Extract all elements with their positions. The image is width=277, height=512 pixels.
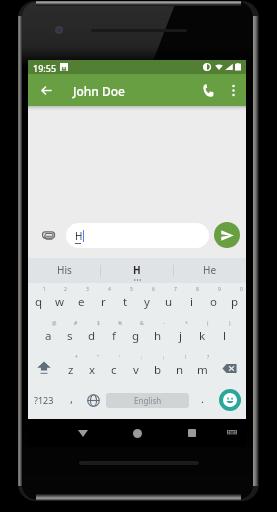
staticText: He — [203, 263, 217, 277]
staticText: 6 — [152, 286, 155, 293]
staticText: h — [154, 328, 162, 344]
button[interactable]: . — [191, 385, 213, 415]
staticText: H — [133, 263, 141, 277]
staticText: . — [201, 391, 204, 406]
button[interactable]: ) — [213, 317, 235, 351]
staticText: 8 — [196, 286, 199, 293]
button[interactable]: 1 — [28, 283, 49, 317]
staticText: b — [154, 362, 162, 378]
button[interactable]: 0 — [224, 283, 246, 317]
staticText: e — [78, 294, 85, 310]
staticText: w — [55, 294, 65, 310]
staticText: k — [199, 328, 206, 344]
button[interactable]: Hide keyboard — [224, 425, 240, 441]
staticText: # — [74, 320, 78, 327]
button[interactable]: His — [28, 258, 100, 283]
button[interactable]: Send — [214, 222, 240, 248]
button[interactable]: Home — [127, 423, 147, 443]
staticText: ( — [207, 320, 209, 327]
staticText: v — [133, 362, 139, 378]
staticText: j — [179, 328, 182, 344]
staticText: + — [185, 320, 188, 327]
button[interactable]: ' — [103, 351, 125, 385]
button[interactable]: 9 — [202, 283, 224, 317]
button[interactable]: H — [66, 223, 209, 248]
staticText: n — [176, 362, 184, 378]
staticText: 19:55 — [33, 62, 57, 74]
button[interactable]: @ — [38, 317, 59, 351]
button[interactable]: Recent apps — [182, 423, 202, 443]
staticText: 0 — [240, 286, 243, 293]
staticText: ? — [207, 354, 210, 361]
button[interactable]: : — [125, 351, 147, 385]
button[interactable]: 2 — [49, 283, 70, 317]
staticText: H — [75, 229, 83, 243]
staticText: " — [97, 354, 100, 361]
button[interactable]: Emoji — [213, 385, 246, 415]
staticText: q — [35, 294, 43, 310]
staticText: John Doe — [73, 83, 125, 99]
button[interactable]: Attach file — [38, 225, 58, 245]
button[interactable]: + — [169, 317, 191, 351]
staticText: ?123 — [34, 394, 54, 406]
button[interactable]: H — [101, 258, 173, 283]
button[interactable]: Shift — [28, 351, 60, 385]
staticText: ' — [119, 354, 121, 361]
button[interactable]: 3 — [70, 283, 92, 317]
button[interactable]: 6 — [136, 283, 158, 317]
button[interactable]: 5 — [114, 283, 136, 317]
staticText: c — [111, 362, 117, 378]
button[interactable]: % — [103, 317, 125, 351]
button[interactable]: 7 — [158, 283, 180, 317]
staticText: 1 — [43, 286, 46, 293]
button[interactable]: Call — [196, 78, 220, 102]
staticText: ) — [229, 320, 231, 327]
button[interactable]: 4 — [92, 283, 114, 317]
staticText: i — [190, 294, 193, 310]
staticText: f — [112, 328, 116, 344]
staticText: ! — [185, 354, 187, 361]
button[interactable]: # — [59, 317, 81, 351]
staticText: o — [210, 294, 217, 310]
staticText: & — [140, 320, 144, 327]
staticText: 9 — [218, 286, 221, 293]
button[interactable]: ( — [191, 317, 213, 351]
staticText: $ — [97, 320, 100, 327]
staticText: t — [123, 294, 128, 310]
button[interactable]: * — [60, 351, 81, 385]
button[interactable]: ! — [169, 351, 191, 385]
staticText: x — [89, 362, 96, 378]
staticText: 5 — [130, 286, 133, 293]
button[interactable]: More options — [221, 78, 245, 102]
staticText: r — [101, 294, 106, 310]
button[interactable]: English — [106, 393, 189, 408]
staticText: % — [118, 320, 123, 327]
staticText: English — [134, 395, 162, 406]
staticText: ; — [163, 354, 165, 361]
staticText: 7 — [174, 286, 177, 293]
button[interactable]: " — [81, 351, 103, 385]
staticText: m — [197, 362, 208, 378]
staticText: l — [223, 328, 226, 344]
button[interactable]: ; — [147, 351, 169, 385]
staticText: y — [144, 294, 150, 310]
button[interactable]: - — [147, 317, 169, 351]
button[interactable]: & — [125, 317, 147, 351]
button[interactable]: Change language — [82, 385, 104, 415]
staticText: , — [70, 391, 73, 406]
button[interactable]: ? — [191, 351, 213, 385]
button[interactable]: He — [174, 258, 246, 283]
button[interactable]: ?123 — [28, 385, 60, 415]
button[interactable]: Backspace — [213, 351, 246, 385]
button[interactable]: $ — [81, 317, 103, 351]
staticText: - — [163, 320, 165, 327]
staticText: * — [75, 354, 78, 361]
staticText: 3 — [86, 286, 89, 293]
button[interactable]: Back — [73, 423, 93, 443]
staticText: g — [132, 328, 140, 344]
button[interactable]: Back — [34, 78, 58, 102]
staticText: z — [68, 362, 74, 378]
button[interactable]: , — [60, 385, 82, 415]
staticText: s — [67, 328, 73, 344]
button[interactable]: 8 — [180, 283, 202, 317]
